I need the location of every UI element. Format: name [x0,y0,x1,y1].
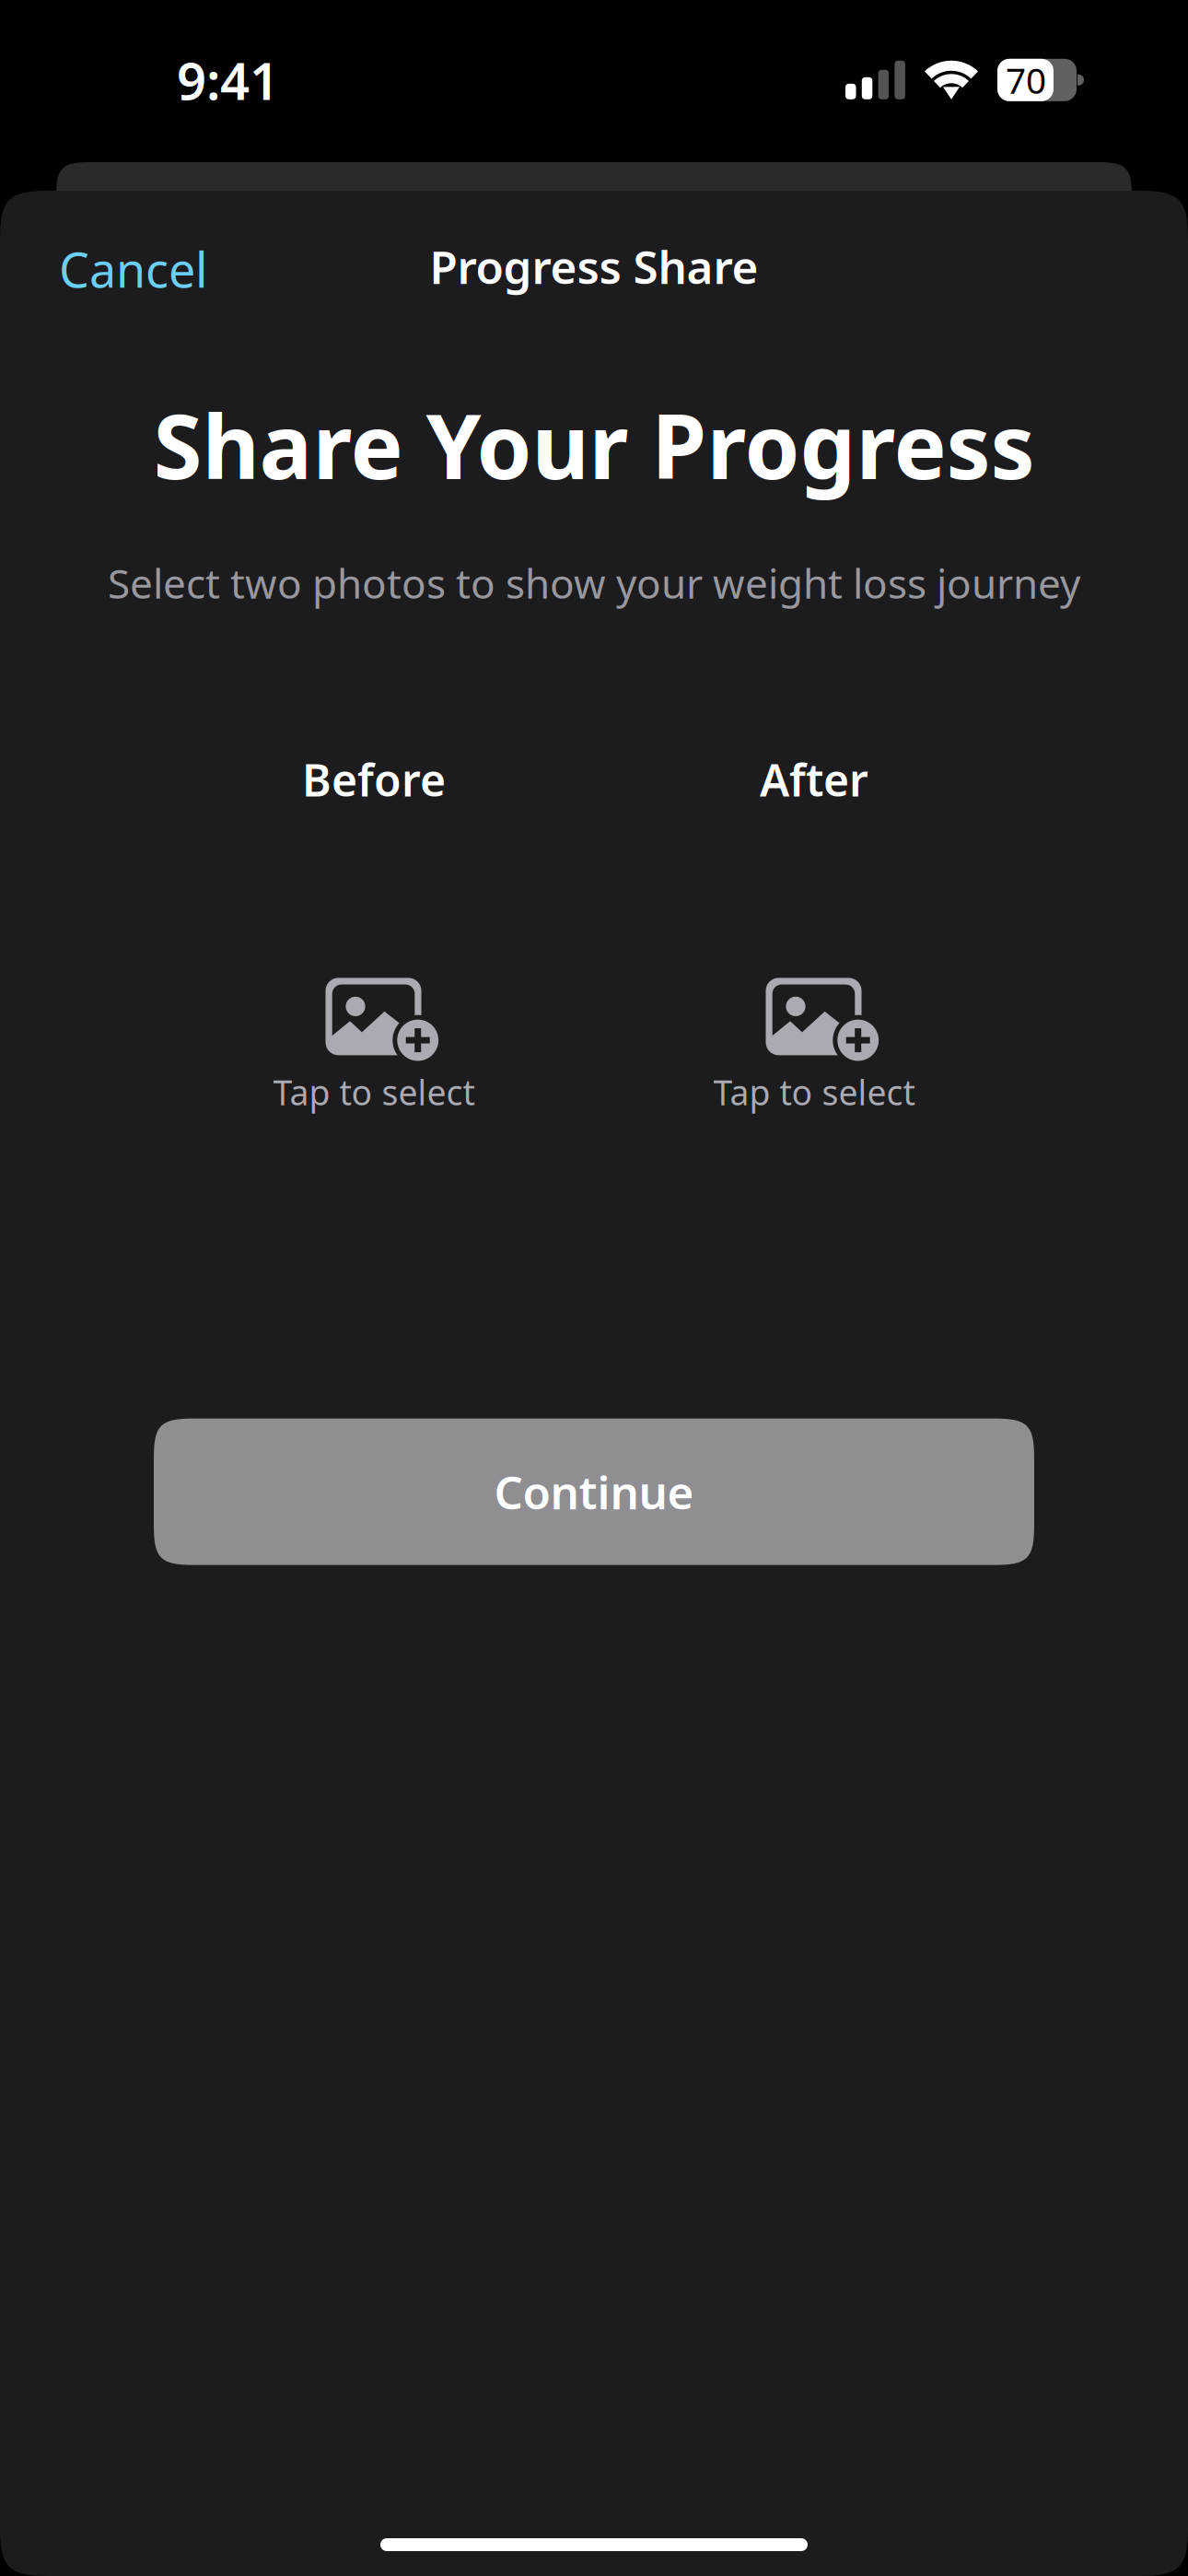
staticText: Share Your Progress [153,386,1035,503]
staticText: Tap to select [713,1069,915,1115]
staticText: 9:41 [177,46,279,114]
button[interactable]: Select before photo [154,861,594,1232]
staticText: Tap to select [273,1069,475,1115]
staticText: Select two photos to show your weight lo… [108,556,1080,610]
staticText: Progress Share [430,236,758,297]
button[interactable]: Select after photo [594,861,1034,1232]
staticText: Cancel [59,237,207,301]
staticText: After [760,750,868,809]
button[interactable]: Cancel [0,190,248,321]
button[interactable]: Continue [154,1419,1034,1565]
staticText: Before [302,750,446,809]
staticText: 70 [1006,56,1046,104]
staticText: Continue [494,1462,694,1522]
